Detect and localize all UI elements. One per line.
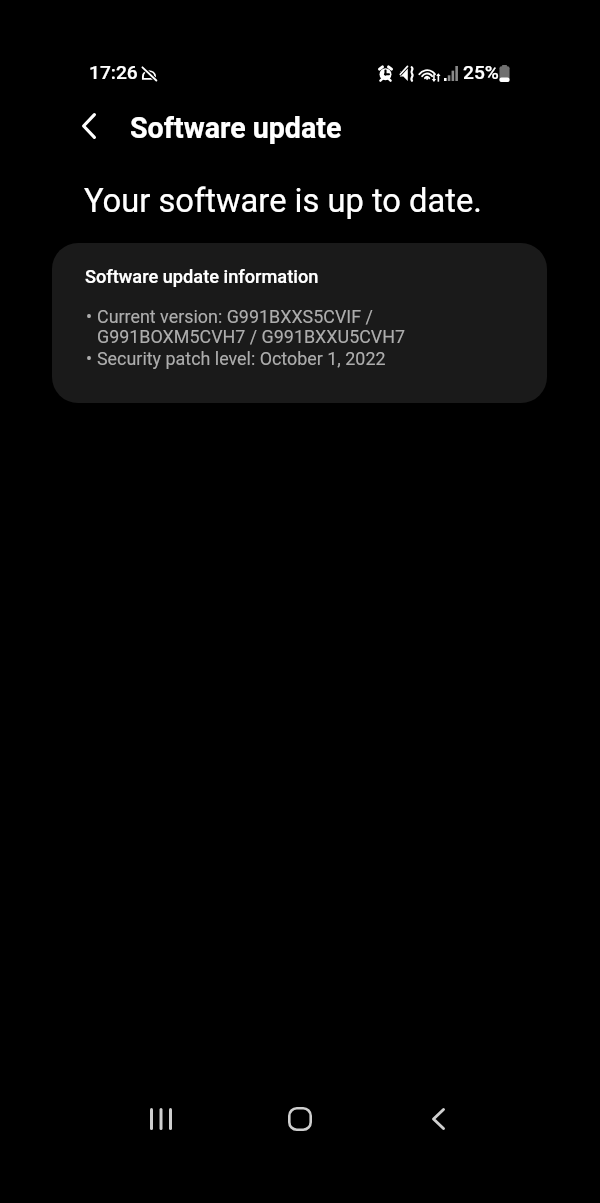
- staticText: 25%: [463, 61, 499, 84]
- button[interactable]: Navigate up: [66, 103, 112, 149]
- staticText: Current version: G991BXXS5CVIF / G991BOX…: [97, 306, 406, 348]
- button[interactable]: Back: [394, 1075, 482, 1163]
- staticText: Security patch level: October 1, 2022: [97, 348, 386, 369]
- button[interactable]: Home: [256, 1075, 344, 1163]
- staticText: Your software is up to date.: [84, 182, 482, 220]
- button[interactable]: Software update information: [52, 243, 547, 403]
- staticText: •: [86, 306, 93, 327]
- staticText: Software update: [130, 111, 342, 145]
- button[interactable]: Recent apps: [117, 1075, 205, 1163]
- staticText: •: [86, 348, 93, 369]
- staticText: 17:26: [89, 61, 138, 84]
- staticText: Software update information: [85, 266, 319, 287]
